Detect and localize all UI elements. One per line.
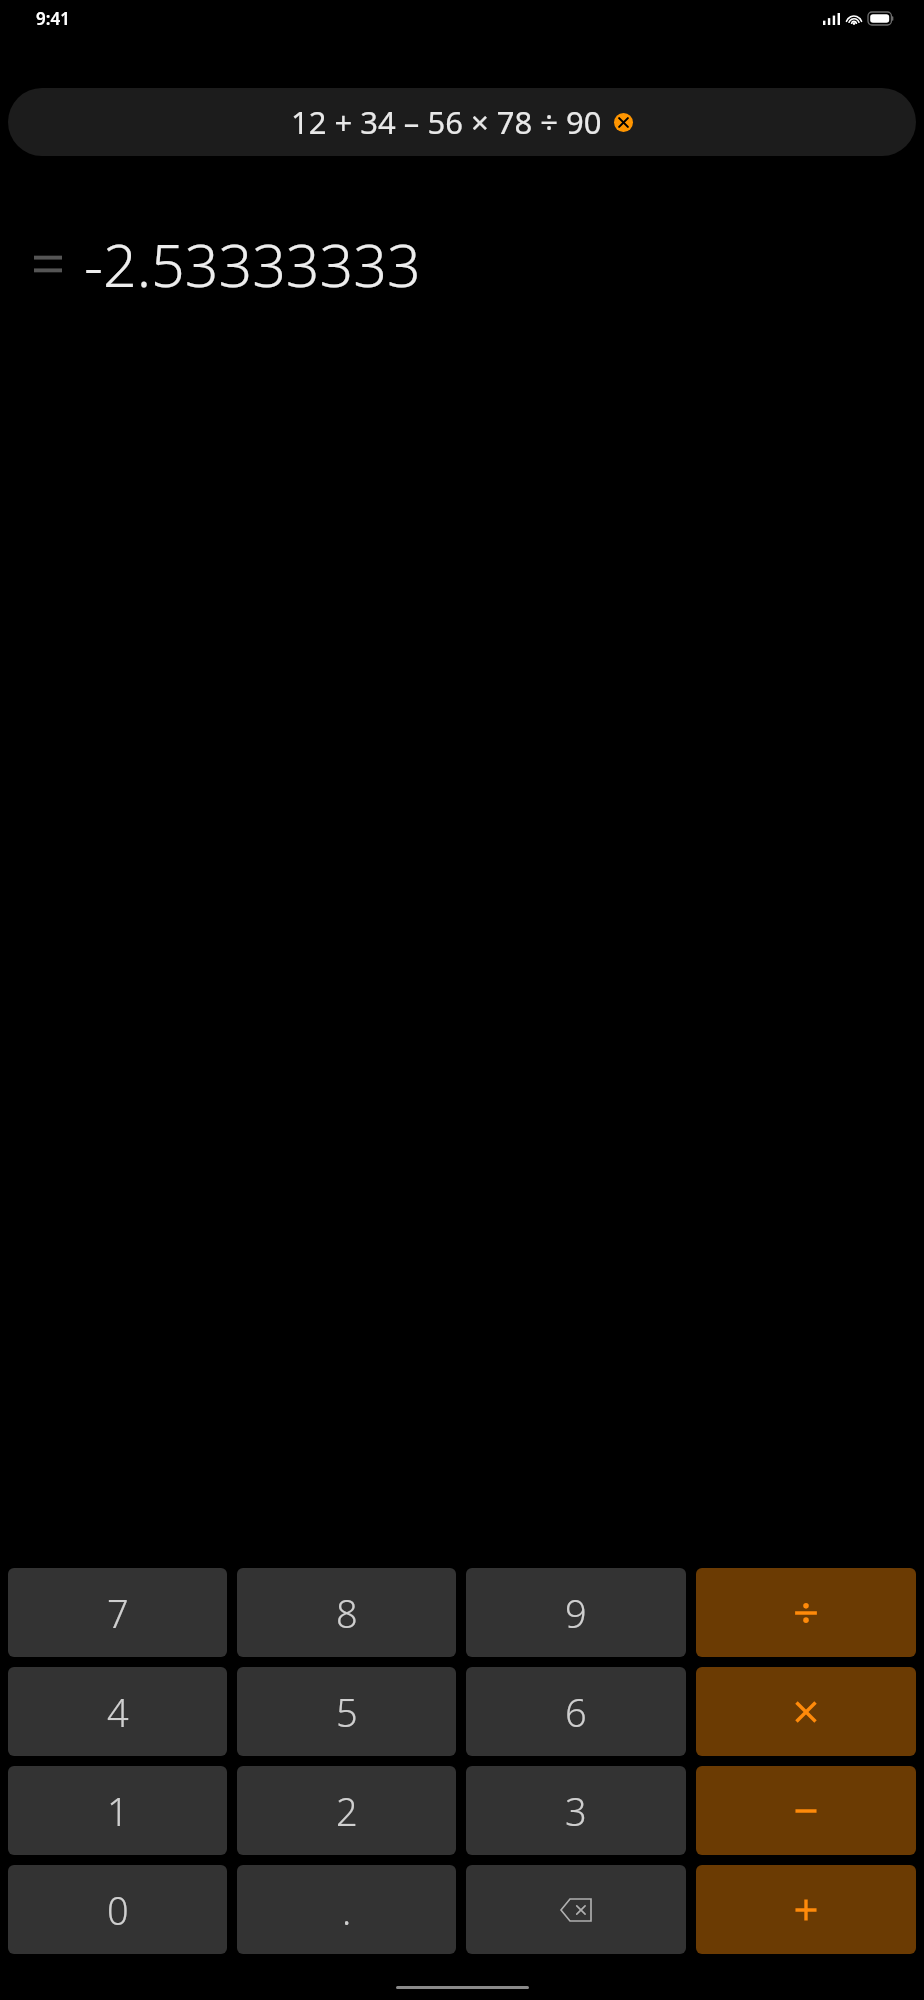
staticText: 9:41	[36, 7, 70, 30]
staticText: 5	[336, 1686, 358, 1738]
button[interactable]: 12 + 34 – 56 × 78 ÷ 90	[8, 88, 916, 156]
button[interactable]: 8	[237, 1568, 456, 1657]
staticText: 0	[107, 1884, 129, 1936]
staticText: 12 + 34 – 56 × 78 ÷ 90	[291, 101, 602, 143]
staticText: 9	[565, 1587, 587, 1639]
button[interactable]: Backspace	[466, 1865, 686, 1954]
button[interactable]	[696, 1667, 916, 1756]
button[interactable]: 2	[237, 1766, 456, 1855]
button[interactable]: 1	[8, 1766, 227, 1855]
button[interactable]: 5	[237, 1667, 456, 1756]
button[interactable]: 7	[8, 1568, 227, 1657]
button[interactable]: 4	[8, 1667, 227, 1756]
staticText: 6	[565, 1686, 587, 1738]
staticText: 4	[107, 1686, 129, 1738]
staticText: 8	[336, 1587, 358, 1639]
staticText: 7	[107, 1587, 129, 1639]
button[interactable]: 0	[8, 1865, 227, 1954]
button[interactable]: Clear	[614, 113, 633, 132]
button[interactable]: 6	[466, 1667, 686, 1756]
button[interactable]: 9	[466, 1568, 686, 1657]
button[interactable]	[696, 1766, 916, 1855]
staticText: -2.53333333	[84, 224, 421, 304]
staticText: 3	[565, 1785, 587, 1837]
button[interactable]: 3	[466, 1766, 686, 1855]
button[interactable]: .	[237, 1865, 456, 1954]
button[interactable]	[696, 1568, 916, 1657]
button[interactable]	[696, 1865, 916, 1954]
staticText: .	[342, 1884, 352, 1936]
staticText: 2	[336, 1785, 358, 1837]
staticText: 1	[107, 1785, 129, 1837]
